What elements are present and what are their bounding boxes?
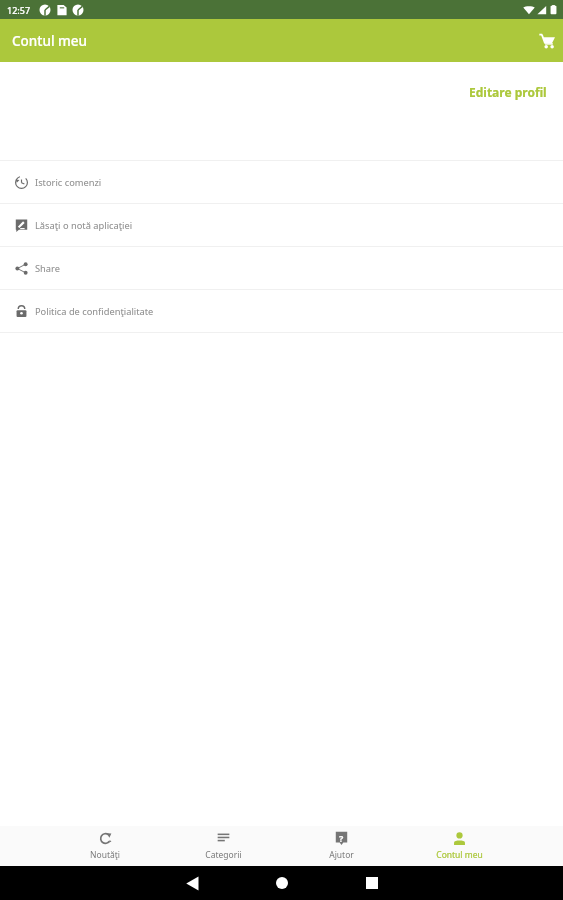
staticText: ? <box>339 832 344 844</box>
staticText: Istoric comenzi <box>35 176 102 189</box>
button[interactable]: Categorii <box>164 826 282 866</box>
button[interactable]: Editare profil <box>451 78 563 106</box>
button[interactable]: Politica de confidenţialitate <box>0 290 563 332</box>
staticText: Categorii <box>205 849 242 861</box>
staticText: Contul meu <box>12 32 88 50</box>
button[interactable]: Share <box>0 247 563 289</box>
staticText: Share <box>35 262 60 275</box>
staticText: 12:57 <box>7 4 31 16</box>
staticText: Politica de confidenţialitate <box>35 305 154 318</box>
button[interactable]: Cart <box>527 23 563 59</box>
button[interactable]: Lăsaţi o notă aplicaţiei <box>0 204 563 246</box>
staticText: Ajutor <box>329 849 354 861</box>
staticText: Lăsaţi o notă aplicaţiei <box>35 219 133 232</box>
button[interactable]: Istoric comenzi <box>0 161 563 203</box>
staticText: Editare profil <box>469 84 547 100</box>
button[interactable]: Back <box>147 866 237 900</box>
staticText: Contul meu <box>436 849 483 861</box>
button[interactable]: Home <box>237 866 327 900</box>
button[interactable]: ? <box>282 826 400 866</box>
staticText: Noutăţi <box>90 849 120 861</box>
button[interactable]: Recent apps <box>327 866 417 900</box>
button[interactable]: Noutăţi <box>46 826 164 866</box>
button[interactable]: Contul meu <box>400 826 518 866</box>
